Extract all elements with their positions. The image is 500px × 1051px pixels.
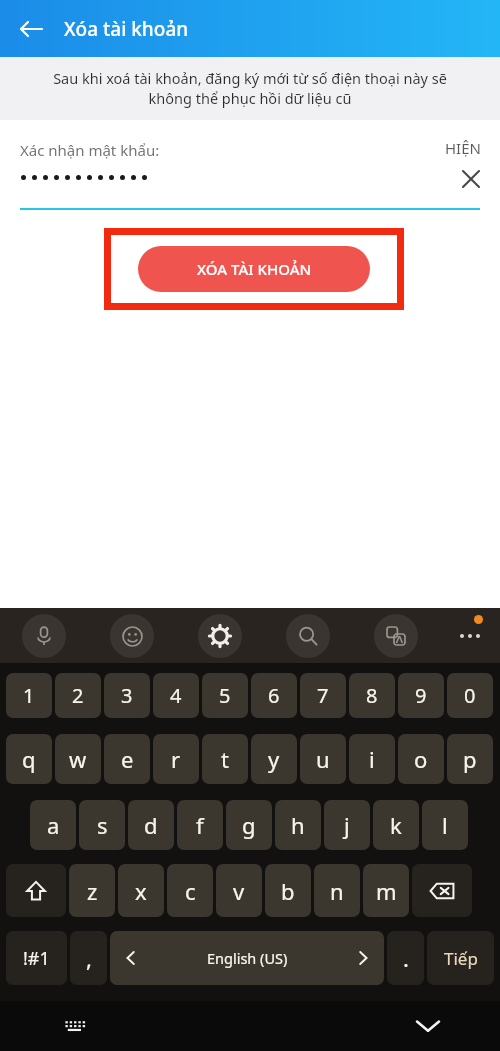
- staticText: 7: [317, 682, 329, 709]
- button[interactable]: XÓA TÀI KHOẢN: [138, 246, 370, 292]
- button[interactable]: v: [216, 864, 262, 917]
- button[interactable]: 9: [398, 673, 444, 718]
- staticText: h: [291, 810, 305, 840]
- button[interactable]: z: [69, 864, 115, 917]
- staticText: j: [344, 810, 350, 840]
- button[interactable]: a: [30, 800, 76, 850]
- button[interactable]: ,: [70, 931, 107, 985]
- staticText: n: [330, 876, 344, 906]
- button[interactable]: Voice input: [22, 614, 66, 658]
- staticText: Xóa tài khoản: [64, 16, 189, 42]
- button[interactable]: 5: [202, 673, 248, 718]
- button[interactable]: Clear: [454, 162, 488, 196]
- button[interactable]: t: [202, 734, 248, 784]
- button[interactable]: Back: [10, 8, 52, 50]
- staticText: .: [403, 943, 409, 973]
- button[interactable]: e: [104, 734, 150, 784]
- staticText: c: [185, 876, 196, 906]
- button[interactable]: Search: [286, 614, 330, 658]
- staticText: a: [47, 810, 60, 840]
- staticText: e: [121, 744, 134, 774]
- button[interactable]: k: [373, 800, 419, 850]
- staticText: u: [316, 744, 330, 774]
- staticText: 6: [268, 682, 280, 709]
- button[interactable]: m: [363, 864, 409, 917]
- staticText: Sau khi xoá tài khoản, đăng ký mới từ số…: [53, 68, 447, 109]
- staticText: x: [135, 876, 147, 906]
- staticText: Tiếp: [444, 947, 478, 970]
- button[interactable]: f: [177, 800, 223, 850]
- staticText: r: [171, 744, 181, 774]
- staticText: 8: [366, 682, 378, 709]
- button[interactable]: Change keyboard: [53, 1004, 97, 1048]
- button[interactable]: Emoji: [110, 614, 154, 658]
- staticText: 2: [72, 682, 84, 709]
- staticText: HIỆN: [445, 138, 481, 158]
- button[interactable]: !#1: [6, 931, 67, 985]
- button[interactable]: 6: [251, 673, 297, 718]
- button[interactable]: x: [118, 864, 164, 917]
- button[interactable]: Key: [6, 864, 66, 917]
- button[interactable]: Hide keyboard: [404, 1002, 452, 1050]
- button[interactable]: n: [314, 864, 360, 917]
- button[interactable]: 2: [55, 673, 101, 718]
- staticText: 0: [464, 682, 476, 709]
- staticText: m: [376, 876, 397, 906]
- button[interactable]: g: [226, 800, 272, 850]
- button[interactable]: l: [422, 800, 468, 850]
- button[interactable]: d: [128, 800, 174, 850]
- staticText: o: [414, 744, 428, 774]
- button[interactable]: 8: [349, 673, 395, 718]
- staticText: 5: [219, 682, 231, 709]
- staticText: y: [268, 744, 280, 774]
- staticText: 9: [415, 682, 427, 709]
- button[interactable]: HIỆN: [440, 130, 486, 166]
- button[interactable]: c: [167, 864, 213, 917]
- button[interactable]: q: [6, 734, 52, 784]
- button[interactable]: b: [265, 864, 311, 917]
- button[interactable]: 4: [153, 673, 199, 718]
- staticText: XÓA TÀI KHOẢN: [197, 259, 312, 279]
- button[interactable]: 3: [104, 673, 150, 718]
- staticText: l: [442, 810, 448, 840]
- button[interactable]: y: [251, 734, 297, 784]
- staticText: !#1: [23, 946, 50, 971]
- staticText: 1: [23, 682, 35, 709]
- button[interactable]: u: [300, 734, 346, 784]
- staticText: v: [233, 876, 245, 906]
- button[interactable]: r: [153, 734, 199, 784]
- staticText: s: [97, 810, 108, 840]
- button[interactable]: 1: [6, 673, 52, 718]
- staticText: z: [87, 876, 98, 906]
- button[interactable]: i: [349, 734, 395, 784]
- button[interactable]: 0: [447, 673, 493, 718]
- button[interactable]: p: [447, 734, 493, 784]
- staticText: q: [22, 744, 36, 774]
- staticText: w: [69, 744, 87, 774]
- button[interactable]: Key: [412, 864, 472, 917]
- button[interactable]: More options: [448, 614, 492, 658]
- staticText: English (US): [207, 948, 288, 968]
- button[interactable]: j: [324, 800, 370, 850]
- staticText: b: [281, 876, 295, 906]
- staticText: 3: [121, 682, 133, 709]
- button[interactable]: o: [398, 734, 444, 784]
- staticText: p: [463, 744, 477, 774]
- button[interactable]: 7: [300, 673, 346, 718]
- staticText: f: [196, 810, 204, 840]
- button[interactable]: w: [55, 734, 101, 784]
- button[interactable]: s: [79, 800, 125, 850]
- button[interactable]: English (US): [110, 931, 384, 985]
- staticText: d: [144, 810, 158, 840]
- button[interactable]: Tiếp: [427, 931, 494, 985]
- staticText: t: [221, 744, 229, 774]
- button[interactable]: h: [275, 800, 321, 850]
- staticText: ,: [86, 943, 92, 973]
- button[interactable]: Translate: [374, 614, 418, 658]
- staticText: k: [390, 810, 402, 840]
- button[interactable]: .: [387, 931, 424, 985]
- staticText: i: [369, 744, 375, 774]
- staticText: Xác nhận mật khẩu:: [20, 140, 160, 160]
- staticText: 4: [170, 682, 182, 709]
- button[interactable]: Settings: [198, 614, 242, 658]
